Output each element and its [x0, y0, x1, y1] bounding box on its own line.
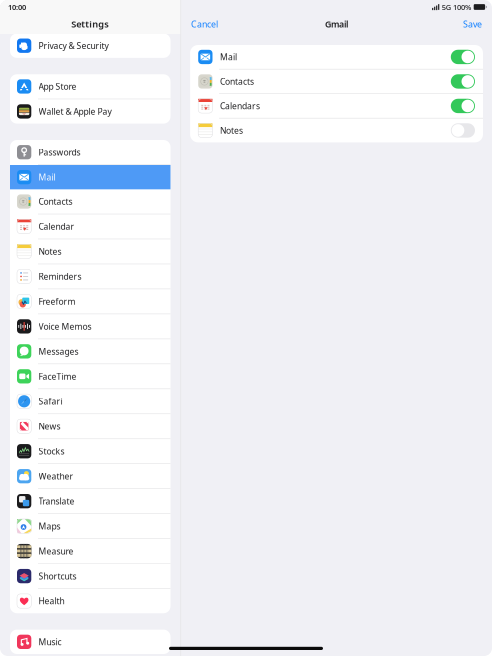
- staticText: Calendar: [38, 221, 74, 232]
- staticText: Safari: [38, 395, 62, 407]
- staticText: 100%: [453, 2, 471, 12]
- button[interactable]: News: [10, 414, 170, 438]
- button[interactable]: Measure: [10, 539, 170, 563]
- button[interactable]: Mail: [10, 165, 170, 189]
- button[interactable]: Wallet & Apple Pay: [10, 99, 170, 124]
- button[interactable]: Cancel: [187, 15, 222, 33]
- staticText: Contacts: [220, 76, 254, 87]
- staticText: FaceTime: [38, 370, 76, 382]
- button[interactable]: FaceTime: [10, 364, 170, 388]
- staticText: Reminders: [38, 271, 81, 282]
- button[interactable]: Shortcuts: [10, 564, 170, 588]
- staticText: Translate: [38, 495, 74, 507]
- button[interactable]: Messages: [10, 339, 170, 364]
- button[interactable]: Health: [10, 589, 170, 613]
- staticText: Weather: [38, 470, 73, 482]
- button[interactable]: Contacts: [10, 189, 170, 214]
- staticText: Mail: [38, 171, 55, 183]
- staticText: Privacy & Security: [38, 40, 108, 51]
- button[interactable]: Notes: [190, 118, 483, 142]
- button[interactable]: Maps: [10, 514, 170, 538]
- button[interactable]: Translate: [10, 489, 170, 513]
- staticText: Music: [38, 636, 61, 648]
- staticText: Cancel: [191, 18, 218, 30]
- button[interactable]: Music: [10, 630, 170, 654]
- button[interactable]: Calendar: [10, 214, 170, 239]
- staticText: Calendars: [220, 100, 260, 112]
- staticText: Contacts: [38, 196, 72, 207]
- staticText: Health: [38, 595, 64, 607]
- staticText: Stocks: [38, 445, 64, 457]
- button[interactable]: Save: [459, 15, 486, 33]
- staticText: Notes: [38, 246, 61, 257]
- staticText: Wallet & Apple Pay: [38, 106, 111, 117]
- staticText: Measure: [38, 545, 73, 557]
- button[interactable]: App Store: [10, 74, 170, 99]
- button[interactable]: Passwords: [10, 140, 170, 164]
- button[interactable]: Freeform: [10, 289, 170, 314]
- button[interactable]: Contacts: [190, 69, 483, 93]
- staticText: Maps: [38, 520, 60, 532]
- staticText: Mail: [220, 51, 237, 63]
- staticText: Settings: [71, 18, 109, 30]
- button[interactable]: Voice Memos: [10, 314, 170, 339]
- staticText: 5G: [442, 2, 451, 12]
- staticText: Freeform: [38, 296, 75, 307]
- button[interactable]: Safari: [10, 389, 170, 413]
- staticText: Gmail: [325, 18, 348, 30]
- button[interactable]: Notes: [10, 239, 170, 264]
- button[interactable]: Calendars: [190, 94, 483, 118]
- staticText: Save: [463, 18, 482, 30]
- button[interactable]: Mail: [190, 45, 483, 69]
- staticText: Voice Memos: [38, 321, 91, 332]
- staticText: Passwords: [38, 146, 80, 158]
- staticText: News: [38, 420, 60, 432]
- button[interactable]: Stocks: [10, 439, 170, 463]
- button[interactable]: Privacy & Security: [10, 33, 170, 58]
- staticText: Messages: [38, 345, 78, 357]
- button[interactable]: Reminders: [10, 264, 170, 289]
- button[interactable]: Weather: [10, 464, 170, 488]
- staticText: App Store: [38, 81, 76, 92]
- staticText: 10:00: [8, 2, 26, 12]
- staticText: Shortcuts: [38, 570, 76, 582]
- staticText: Notes: [220, 125, 243, 136]
